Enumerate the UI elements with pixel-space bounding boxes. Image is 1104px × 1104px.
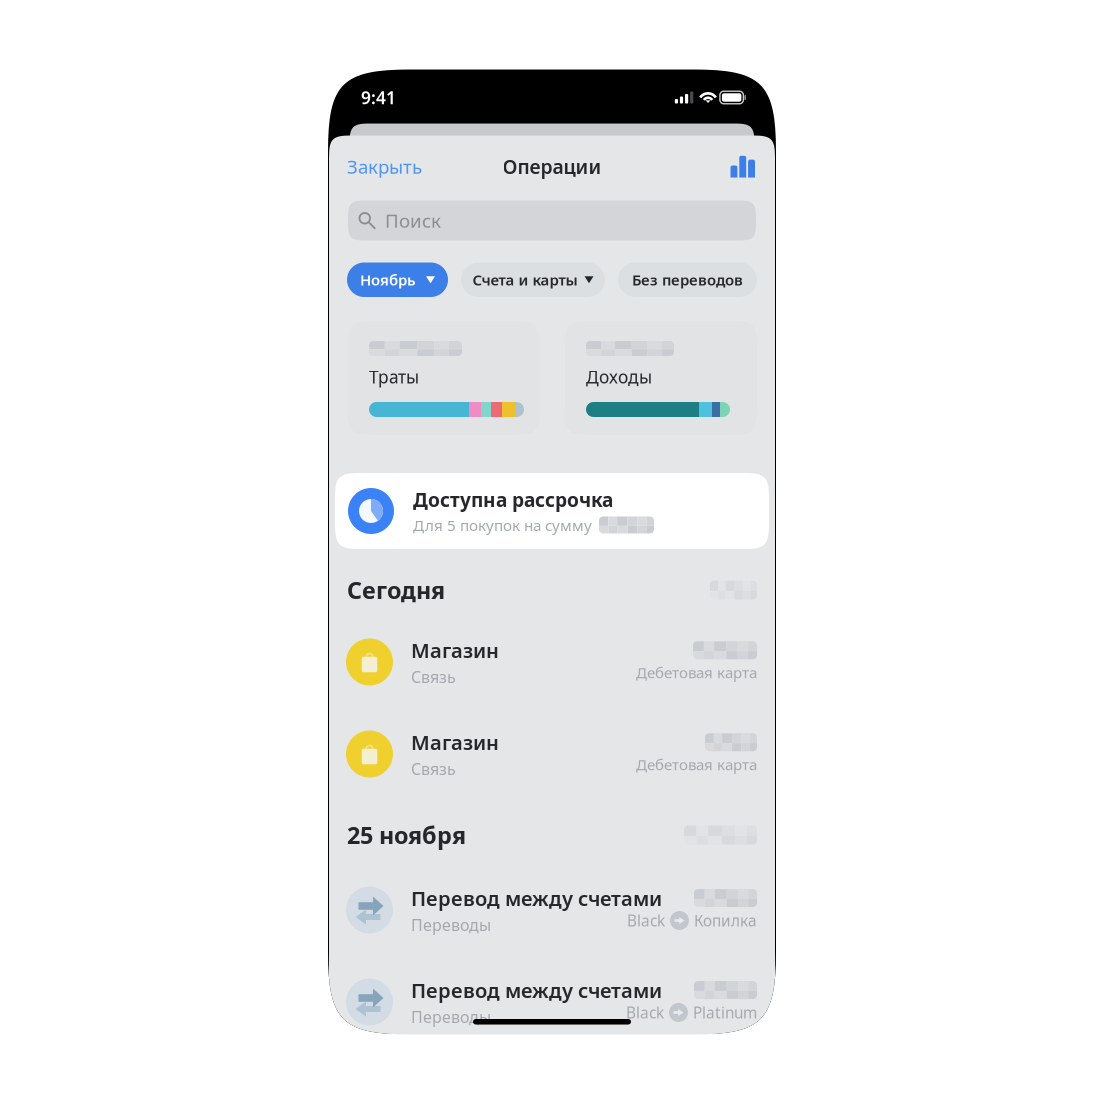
- staticText: 25 ноября: [347, 819, 466, 851]
- button[interactable]: Поиск: [348, 200, 756, 240]
- staticText: Дебетовая карта: [636, 754, 757, 775]
- staticText: Без переводов: [632, 270, 743, 290]
- button[interactable]: Аналитика: [712, 144, 776, 188]
- staticText: Копилка: [694, 910, 757, 931]
- button[interactable]: Перевод между счетами: [328, 864, 776, 956]
- button[interactable]: Без переводов: [618, 262, 757, 297]
- staticText: Ноябрь: [360, 270, 416, 290]
- button[interactable]: Доступна рассрочка: [335, 473, 769, 549]
- staticText: Траты: [369, 365, 419, 389]
- button[interactable]: Счета и карты: [461, 262, 605, 297]
- staticText: Переводы: [411, 914, 491, 936]
- staticText: Black: [626, 1002, 664, 1023]
- staticText: Связь: [411, 666, 456, 688]
- button[interactable]: Доходы: [565, 321, 757, 435]
- staticText: Магазин: [411, 636, 499, 664]
- staticText: Перевод между счетами: [411, 884, 662, 912]
- staticText: Связь: [411, 758, 456, 780]
- button[interactable]: Ноябрь: [347, 262, 448, 297]
- button[interactable]: Магазин: [328, 616, 776, 708]
- button[interactable]: Траты: [348, 321, 540, 435]
- staticText: Переводы: [411, 1006, 491, 1028]
- staticText: Доходы: [586, 365, 652, 389]
- staticText: Сегодня: [347, 574, 445, 606]
- staticText: Перевод между счетами: [411, 976, 662, 1004]
- button[interactable]: Перевод между счетами: [328, 956, 776, 1048]
- staticText: Доступна рассрочка: [413, 487, 613, 513]
- staticText: 9:41: [361, 86, 396, 109]
- staticText: Магазин: [411, 728, 499, 756]
- staticText: Операции: [502, 153, 601, 180]
- staticText: Закрыть: [347, 154, 422, 179]
- staticText: Дебетовая карта: [636, 662, 757, 683]
- button[interactable]: Магазин: [328, 708, 776, 800]
- staticText: Для 5 покупок на сумму: [413, 515, 592, 535]
- button[interactable]: Закрыть: [328, 144, 436, 188]
- staticText: Black: [627, 910, 665, 931]
- staticText: Счета и карты: [472, 270, 577, 290]
- staticText: Поиск: [385, 208, 441, 233]
- staticText: Platinum: [693, 1002, 757, 1023]
